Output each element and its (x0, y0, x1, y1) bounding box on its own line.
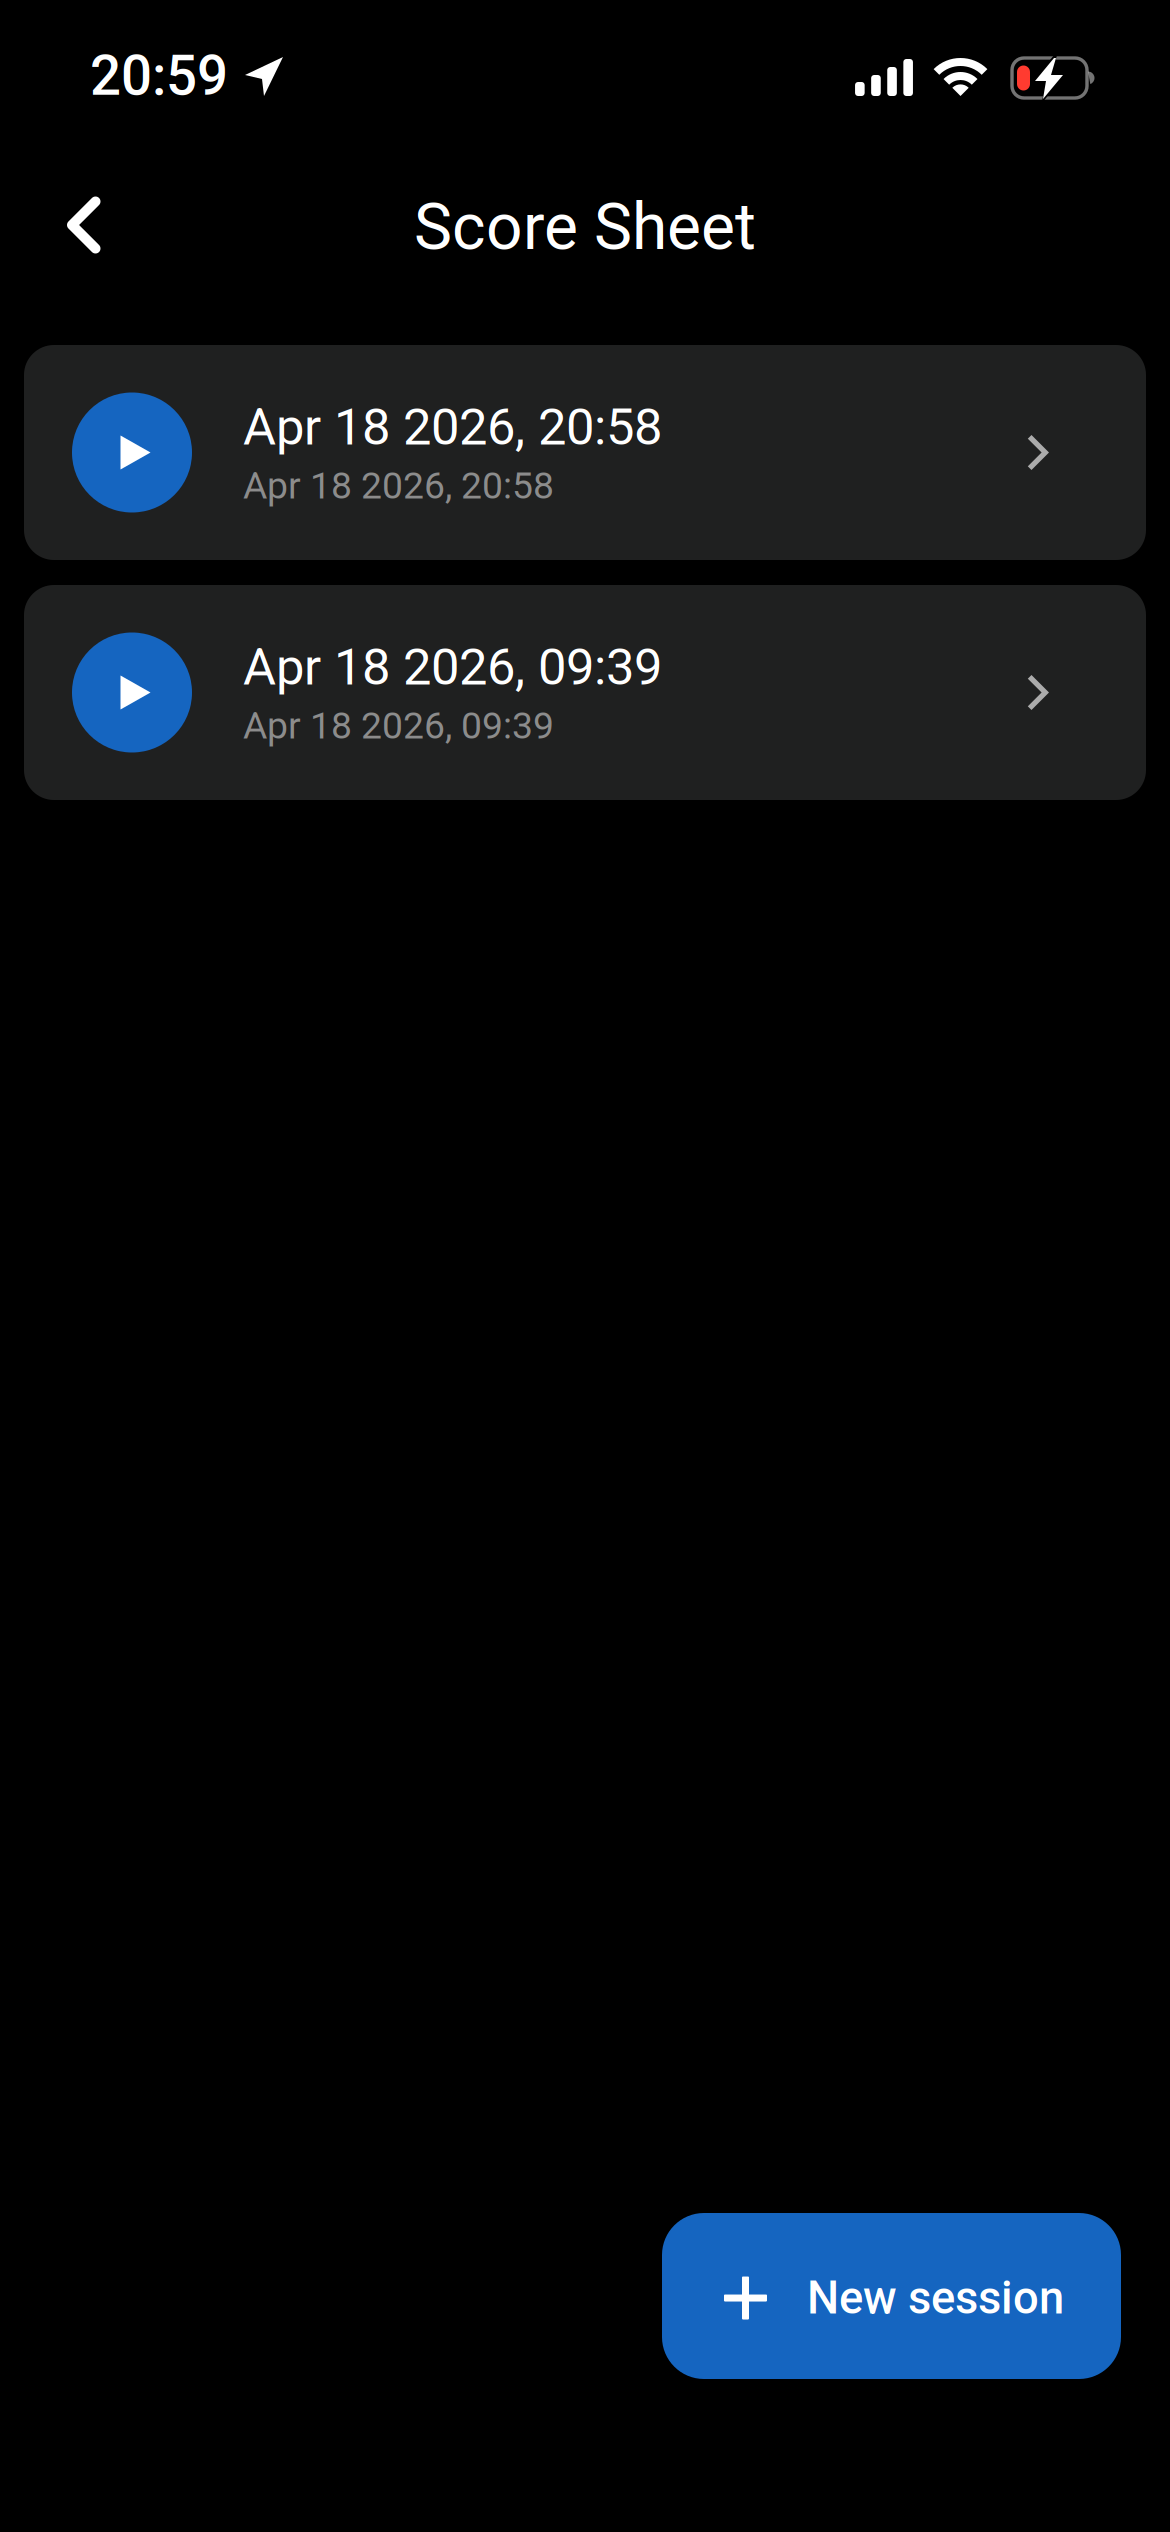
staticText: Apr 18 2026, 20:58 (243, 397, 662, 457)
staticText: Apr 18 2026, 09:39 (243, 704, 554, 747)
staticText: 20:59 (90, 44, 228, 108)
button[interactable]: New session (662, 2213, 1121, 2379)
button[interactable]: Apr 18 2026, 20:58 (24, 345, 1146, 560)
staticText: Apr 18 2026, 20:58 (243, 464, 554, 507)
staticText: Score Sheet (414, 189, 756, 264)
staticText: Apr 18 2026, 09:39 (243, 637, 662, 697)
staticText: New session (807, 2271, 1064, 2324)
button[interactable]: Apr 18 2026, 09:39 (24, 585, 1146, 800)
button[interactable]: Back (0, 170, 141, 279)
